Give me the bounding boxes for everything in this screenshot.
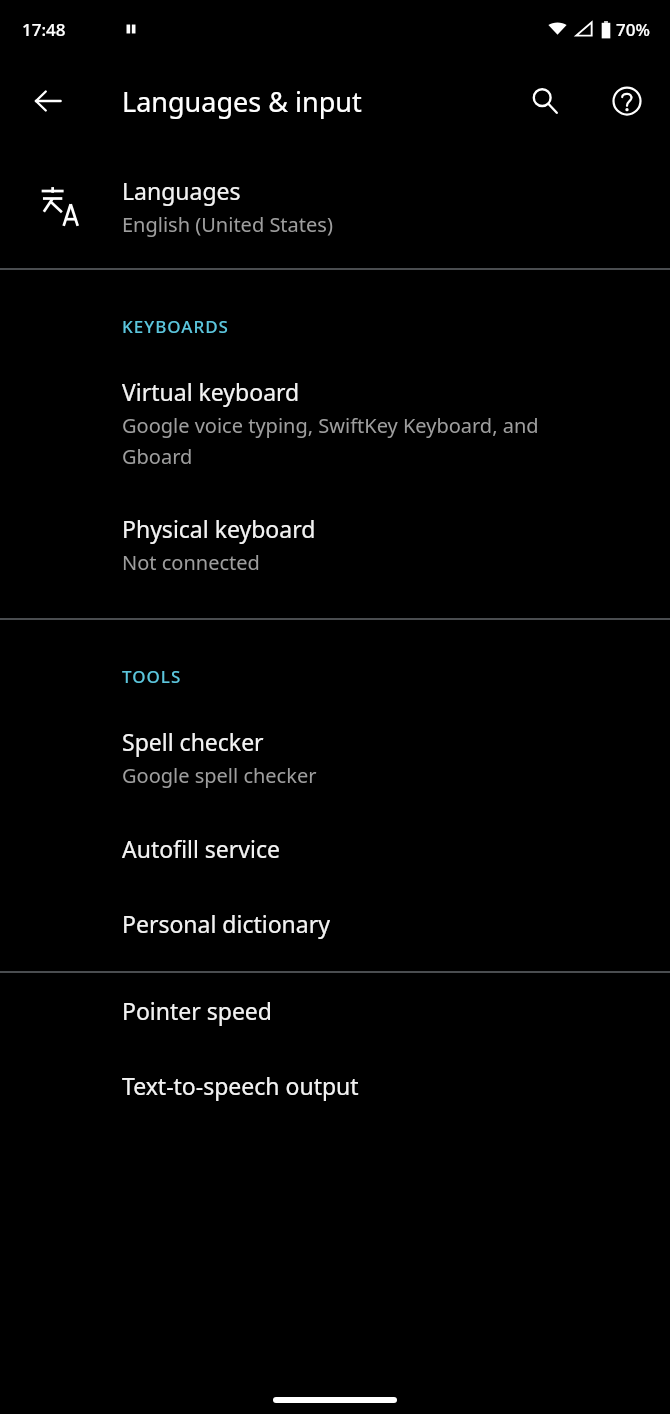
staticText: 70% (616, 18, 650, 41)
button[interactable]: Personal dictionary (0, 886, 670, 961)
button[interactable]: Pointer speed (0, 973, 670, 1048)
staticText: Google voice typing, SwiftKey Keyboard, … (122, 412, 608, 469)
staticText: Google spell checker (122, 762, 317, 789)
button[interactable]: Back (14, 67, 82, 135)
staticText: Autofill service (122, 833, 280, 864)
staticText: Physical keyboard (122, 513, 316, 544)
button[interactable]: Physical keyboard (0, 491, 670, 598)
staticText: English (United States) (122, 211, 333, 238)
staticText: Not connected (122, 549, 260, 576)
staticText: 17:48 (22, 18, 66, 41)
staticText: Spell checker (122, 726, 264, 757)
staticText: KEYBOARDS (122, 315, 229, 338)
staticText: TOOLS (122, 665, 182, 688)
button[interactable]: Virtual keyboard (0, 354, 670, 491)
button[interactable]: Autofill service (0, 811, 670, 886)
staticText: Languages & input (122, 83, 362, 120)
staticText: Languages (122, 175, 241, 206)
staticText: Pointer speed (122, 995, 272, 1026)
button[interactable]: Help (596, 70, 658, 132)
staticText: Text-to-speech output (122, 1070, 359, 1101)
button[interactable]: Text-to-speech output (0, 1048, 670, 1123)
button[interactable]: Languages (0, 144, 670, 268)
staticText: Virtual keyboard (122, 376, 300, 407)
button[interactable]: Search (514, 70, 576, 132)
staticText: Personal dictionary (122, 908, 330, 939)
button[interactable]: Spell checker (0, 704, 670, 811)
